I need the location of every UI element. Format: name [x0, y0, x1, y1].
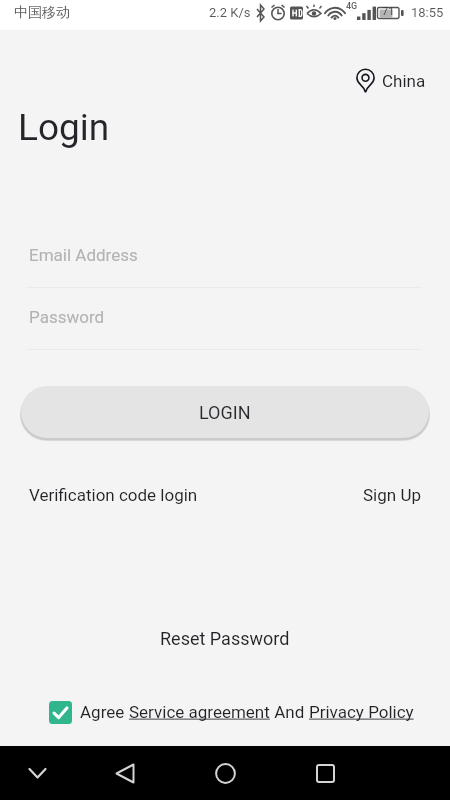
- staticText: Service agreement: [129, 702, 270, 722]
- button[interactable]: Password: [26, 294, 422, 350]
- staticText: 71: [382, 5, 395, 18]
- button[interactable]: Sign Up: [358, 481, 426, 509]
- button[interactable]: Select country: [352, 66, 430, 95]
- button[interactable]: Verification code login: [24, 481, 203, 509]
- button[interactable]: Recent apps: [297, 746, 353, 800]
- staticText: Password: [29, 307, 105, 327]
- staticText: Privacy Policy: [309, 702, 414, 722]
- staticText: Email Address: [29, 245, 138, 265]
- button[interactable]: Home: [197, 746, 253, 800]
- button[interactable]: Reset Password: [154, 624, 296, 653]
- button[interactable]: LOGIN: [21, 386, 429, 438]
- staticText: 4G: [346, 1, 358, 12]
- staticText: And: [270, 702, 309, 722]
- staticText: 中国移动: [14, 4, 70, 22]
- button[interactable]: Service agreement: [129, 702, 270, 722]
- staticText: Login: [18, 106, 110, 149]
- button[interactable]: Email Address: [26, 232, 422, 288]
- button[interactable]: Back: [97, 746, 153, 800]
- staticText: LOGIN: [199, 402, 251, 423]
- button[interactable]: Privacy Policy: [309, 702, 414, 722]
- staticText: Reset Password: [160, 628, 290, 649]
- staticText: 18:55: [411, 5, 444, 20]
- button[interactable]: Hide keyboard: [9, 746, 65, 800]
- staticText: 2.2 K/s: [209, 5, 251, 20]
- staticText: China: [382, 71, 426, 91]
- button[interactable]: Agree to terms: [48, 700, 72, 724]
- staticText: Sign Up: [363, 485, 421, 505]
- staticText: Verification code login: [29, 485, 198, 505]
- staticText: Agree: [80, 702, 129, 722]
